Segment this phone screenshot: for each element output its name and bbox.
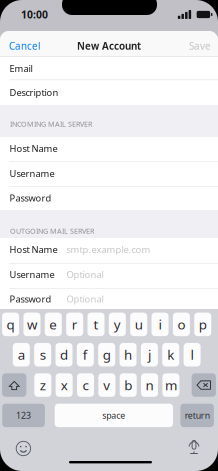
staticText: g [103,346,111,364]
staticText: Email [10,62,33,75]
button[interactable]: Backspace [192,373,216,397]
staticText: j [148,346,151,364]
button[interactable]: j [141,343,158,366]
button[interactable]: i [152,313,169,336]
staticText: d [60,346,68,364]
button[interactable]: Emoji keyboard [15,440,31,456]
staticText: m [165,376,177,394]
button[interactable]: 123 [2,404,45,427]
staticText: f [83,346,88,364]
button[interactable]: d [55,343,72,366]
button[interactable]: Cancel [9,39,55,53]
button[interactable]: c [77,373,94,397]
button[interactable]: o [173,313,190,336]
staticText: x [61,376,68,394]
staticText: 123 [16,409,31,421]
button[interactable]: p [194,313,211,336]
staticText: b [124,376,132,394]
staticText: space [102,409,125,421]
staticText: c [82,376,88,394]
staticText: INCOMING MAIL SERVER [10,119,92,129]
button[interactable]: l [184,343,201,366]
button[interactable]: r [66,313,83,336]
button[interactable]: z [34,373,51,397]
staticText: t [93,315,98,333]
staticText: v [103,376,110,394]
button[interactable]: n [141,373,158,397]
staticText: z [40,376,46,394]
staticText: s [40,346,46,364]
button[interactable]: a [13,343,30,366]
button[interactable]: return [180,404,214,427]
staticText: h [124,346,132,364]
button[interactable]: h [119,343,136,366]
staticText: l [191,346,194,364]
staticText: r [72,315,78,333]
button[interactable]: m [162,373,179,397]
staticText: w [27,315,37,333]
button[interactable]: b [120,373,137,397]
button[interactable]: u [130,313,147,336]
staticText: Save [189,39,211,53]
button[interactable]: v [98,373,115,397]
staticText: q [7,315,15,333]
staticText: OUTGOING MAIL SERVER [10,226,94,236]
staticText: Host Name [10,243,58,256]
button[interactable]: x [56,373,73,397]
button[interactable]: Save [166,39,211,53]
staticText: Username [10,268,55,281]
staticText: Optional [66,268,103,281]
button[interactable]: f [77,343,94,366]
button[interactable]: w [23,313,40,336]
staticText: a [18,346,25,364]
staticText: k [167,346,174,364]
button[interactable]: Shift [2,373,26,397]
button[interactable]: Dictation [187,440,201,456]
staticText: Password [10,192,52,204]
staticText: i [159,315,162,333]
staticText: Optional [66,293,103,305]
staticText: return [185,409,210,421]
staticText: Password [10,293,52,305]
staticText: Description [10,86,59,99]
staticText: Username [10,167,55,180]
button[interactable]: e [45,313,62,336]
staticText: p [199,315,207,333]
staticText: e [49,315,57,333]
button[interactable]: k [162,343,179,366]
staticText: smtp.example.com [66,243,150,256]
staticText: Host Name [10,142,58,155]
staticText: u [135,315,143,333]
button[interactable]: s [34,343,51,366]
button[interactable]: t [87,313,104,336]
staticText: o [177,315,185,333]
button[interactable]: g [98,343,115,366]
staticText: y [114,315,121,333]
staticText: 10:00 [21,7,48,22]
staticText: New Account [77,39,141,53]
staticText: n [146,376,154,394]
button[interactable]: space [55,404,173,427]
button[interactable]: y [109,313,126,336]
staticText: Cancel [9,39,41,53]
button[interactable]: q [2,313,19,336]
